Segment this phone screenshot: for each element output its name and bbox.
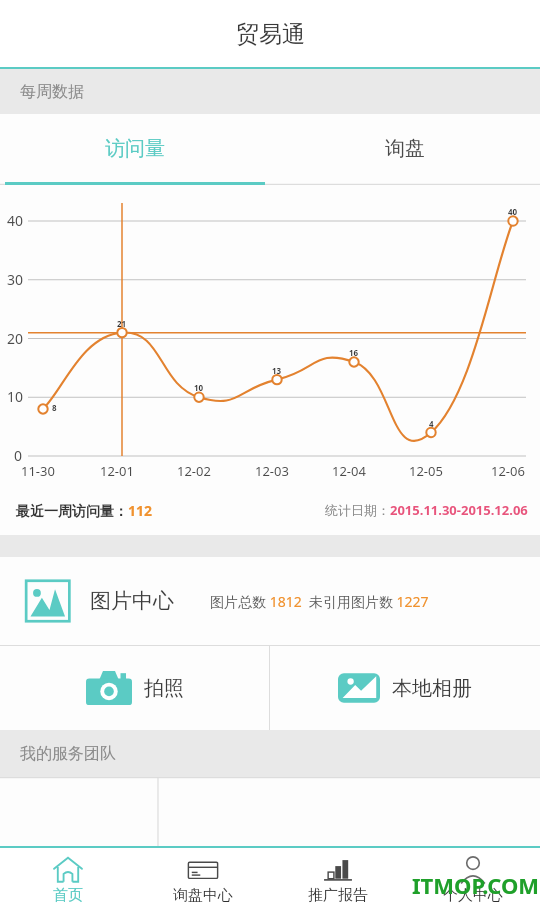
staticText: 16 bbox=[349, 347, 359, 358]
staticText: 4 bbox=[429, 418, 434, 429]
staticText: 最近一周访问量：112 bbox=[16, 501, 153, 520]
button[interactable]: 首页 bbox=[0, 846, 135, 920]
button[interactable]: 图片中心 bbox=[0, 557, 540, 645]
staticText: 拍照 bbox=[144, 676, 184, 701]
button[interactable]: 本地相册 bbox=[270, 646, 540, 730]
staticText: 12-01 bbox=[100, 462, 134, 480]
staticText: 首页 bbox=[53, 886, 83, 905]
staticText: 11-30 bbox=[21, 462, 55, 480]
button[interactable]: 拍照 bbox=[0, 646, 269, 730]
staticText: 12-02 bbox=[177, 462, 211, 480]
button[interactable]: 访问量 bbox=[0, 114, 270, 182]
staticText: 12-04 bbox=[332, 462, 366, 480]
staticText: 12-06 bbox=[491, 462, 525, 480]
button[interactable]: 询盘 bbox=[270, 114, 540, 182]
staticText: 30 bbox=[7, 270, 24, 289]
button[interactable] bbox=[0, 777, 540, 920]
staticText: 我的服务团队 bbox=[20, 744, 116, 764]
staticText: 21 bbox=[117, 318, 127, 329]
button[interactable]: 推广报告 bbox=[270, 846, 405, 920]
staticText: 统计日期：2015.11.30-2015.12.06 bbox=[325, 501, 528, 519]
staticText: 图片总数 1812 未引用图片数 1227 bbox=[210, 592, 429, 611]
staticText: 询盘 bbox=[385, 136, 425, 161]
staticText: 40 bbox=[508, 206, 518, 217]
staticText: 访问量 bbox=[105, 136, 165, 161]
staticText: 40 bbox=[7, 211, 24, 230]
staticText: 0 bbox=[14, 446, 23, 465]
staticText: 10 bbox=[7, 387, 24, 406]
staticText: 13 bbox=[272, 365, 282, 376]
staticText: 10 bbox=[194, 382, 204, 393]
staticText: 图片中心 bbox=[90, 588, 174, 614]
staticText: 12-03 bbox=[255, 462, 289, 480]
staticText: 推广报告 bbox=[308, 886, 368, 905]
staticText: 每周数据 bbox=[20, 82, 84, 102]
staticText: 20 bbox=[7, 329, 24, 348]
staticText: 12-05 bbox=[409, 462, 443, 480]
staticText: 个人中心 bbox=[443, 886, 503, 905]
staticText: 8 bbox=[52, 402, 57, 413]
button[interactable]: 个人中心 bbox=[405, 846, 540, 920]
staticText: 询盘中心 bbox=[173, 886, 233, 905]
button[interactable]: 询盘中心 bbox=[135, 846, 270, 920]
staticText: 贸易通 bbox=[236, 20, 305, 49]
staticText: 本地相册 bbox=[392, 676, 472, 701]
staticText: ITMOP.COM bbox=[412, 870, 540, 900]
